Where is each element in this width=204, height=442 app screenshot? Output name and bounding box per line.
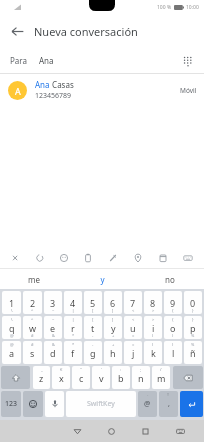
staticText: r	[71, 322, 75, 334]
button[interactable]: Para	[0, 48, 204, 73]
staticText: \	[11, 308, 13, 313]
button[interactable]: 0	[184, 291, 202, 314]
staticText: }	[192, 308, 194, 313]
staticText: Móvil	[180, 86, 197, 95]
button[interactable]: 4	[64, 291, 82, 314]
button[interactable]: 3	[44, 291, 62, 314]
staticText: e	[50, 322, 56, 334]
button[interactable]: Shift	[1, 366, 30, 389]
button[interactable]: "	[72, 366, 90, 389]
button[interactable]: Numbers	[1, 391, 21, 417]
staticText: f	[71, 347, 75, 359]
staticText: %	[191, 333, 195, 338]
staticText: A	[15, 85, 21, 97]
button[interactable]: Location	[125, 247, 150, 269]
button[interactable]: 7	[124, 291, 142, 314]
button[interactable]: ^	[23, 316, 42, 339]
staticText: *	[72, 342, 75, 347]
button[interactable]: no	[136, 269, 204, 289]
button[interactable]: Backspace	[173, 366, 203, 389]
button[interactable]: At sign	[138, 391, 157, 417]
button[interactable]: &	[44, 341, 62, 364]
button[interactable]: Close	[4, 247, 28, 269]
button[interactable]: _	[33, 366, 50, 389]
staticText: <	[132, 317, 135, 322]
button[interactable]: me	[0, 269, 68, 289]
button[interactable]: +	[104, 341, 122, 364]
staticText: 3	[50, 297, 56, 309]
staticText: p	[190, 322, 196, 334]
button[interactable]: Back	[60, 420, 94, 442]
button[interactable]: A	[0, 74, 204, 106]
button[interactable]: Space	[66, 391, 136, 417]
button[interactable]: €	[52, 366, 70, 389]
button[interactable]: 2	[23, 291, 42, 314]
staticText: z	[39, 372, 44, 384]
staticText: }	[192, 317, 194, 322]
button[interactable]: *	[64, 341, 82, 364]
button[interactable]: /	[152, 366, 170, 389]
button[interactable]: \	[2, 316, 21, 339]
button[interactable]: Back	[0, 14, 34, 48]
button[interactable]: >	[144, 316, 162, 339]
button[interactable]: '	[92, 366, 110, 389]
staticText: w	[29, 322, 37, 334]
staticText: 123456789	[35, 91, 72, 101]
staticText: 100 %	[157, 4, 172, 11]
staticText: [	[92, 317, 94, 322]
button[interactable]: {	[164, 316, 182, 339]
staticText: g	[90, 347, 96, 359]
staticText: {	[172, 317, 174, 322]
button[interactable]: Hide keyboard	[163, 420, 198, 442]
button[interactable]: Enter	[180, 391, 203, 417]
button[interactable]: -	[84, 341, 102, 364]
button[interactable]: <	[124, 316, 142, 339]
button[interactable]: Recents	[128, 420, 163, 442]
staticText: ]	[112, 317, 114, 322]
button[interactable]: [	[84, 316, 102, 339]
staticText: o	[170, 322, 176, 334]
staticText: me	[28, 274, 40, 285]
button[interactable]: Home	[94, 420, 128, 442]
button[interactable]: ]	[104, 316, 122, 339]
button[interactable]: (	[144, 341, 162, 364]
button[interactable]: Keyboard	[175, 247, 200, 269]
button[interactable]: ~	[44, 316, 62, 339]
button[interactable]: =	[124, 341, 142, 364]
button[interactable]: Draw	[100, 247, 125, 269]
button[interactable]: 6	[104, 291, 122, 314]
staticText: n	[138, 372, 144, 384]
button[interactable]: ;	[132, 366, 150, 389]
staticText: 10:00	[186, 4, 199, 11]
staticText: %	[191, 342, 195, 347]
button[interactable]: |	[64, 316, 82, 339]
button[interactable]: y	[68, 269, 136, 289]
button[interactable]: Stickers	[28, 247, 52, 269]
staticText: ;	[140, 367, 142, 372]
button[interactable]: }	[184, 316, 202, 339]
staticText: j	[132, 347, 135, 359]
staticText: ~	[52, 308, 55, 313]
staticText: -	[92, 342, 94, 347]
button[interactable]: )	[164, 341, 182, 364]
button[interactable]: :	[112, 366, 130, 389]
staticText: @	[10, 333, 14, 338]
button[interactable]: 9	[164, 291, 182, 314]
staticText: #	[31, 342, 34, 347]
button[interactable]: Comma	[159, 391, 178, 417]
button[interactable]: %	[184, 341, 202, 364]
button[interactable]: 1	[2, 291, 21, 314]
button[interactable]: Calendar	[150, 247, 175, 269]
button[interactable]: @	[2, 341, 21, 364]
button[interactable]: Emoji	[52, 247, 76, 269]
button[interactable]: 5	[84, 291, 102, 314]
button[interactable]: 8	[144, 291, 162, 314]
staticText: y	[100, 274, 105, 285]
button[interactable]: Clipboard	[76, 247, 100, 269]
button[interactable]: Emoji	[23, 391, 43, 417]
button[interactable]: #	[23, 341, 42, 364]
staticText: Para	[10, 55, 27, 66]
button[interactable]: Dial pad	[175, 48, 200, 73]
staticText: (	[152, 342, 154, 347]
button[interactable]: Voice input	[45, 391, 64, 417]
